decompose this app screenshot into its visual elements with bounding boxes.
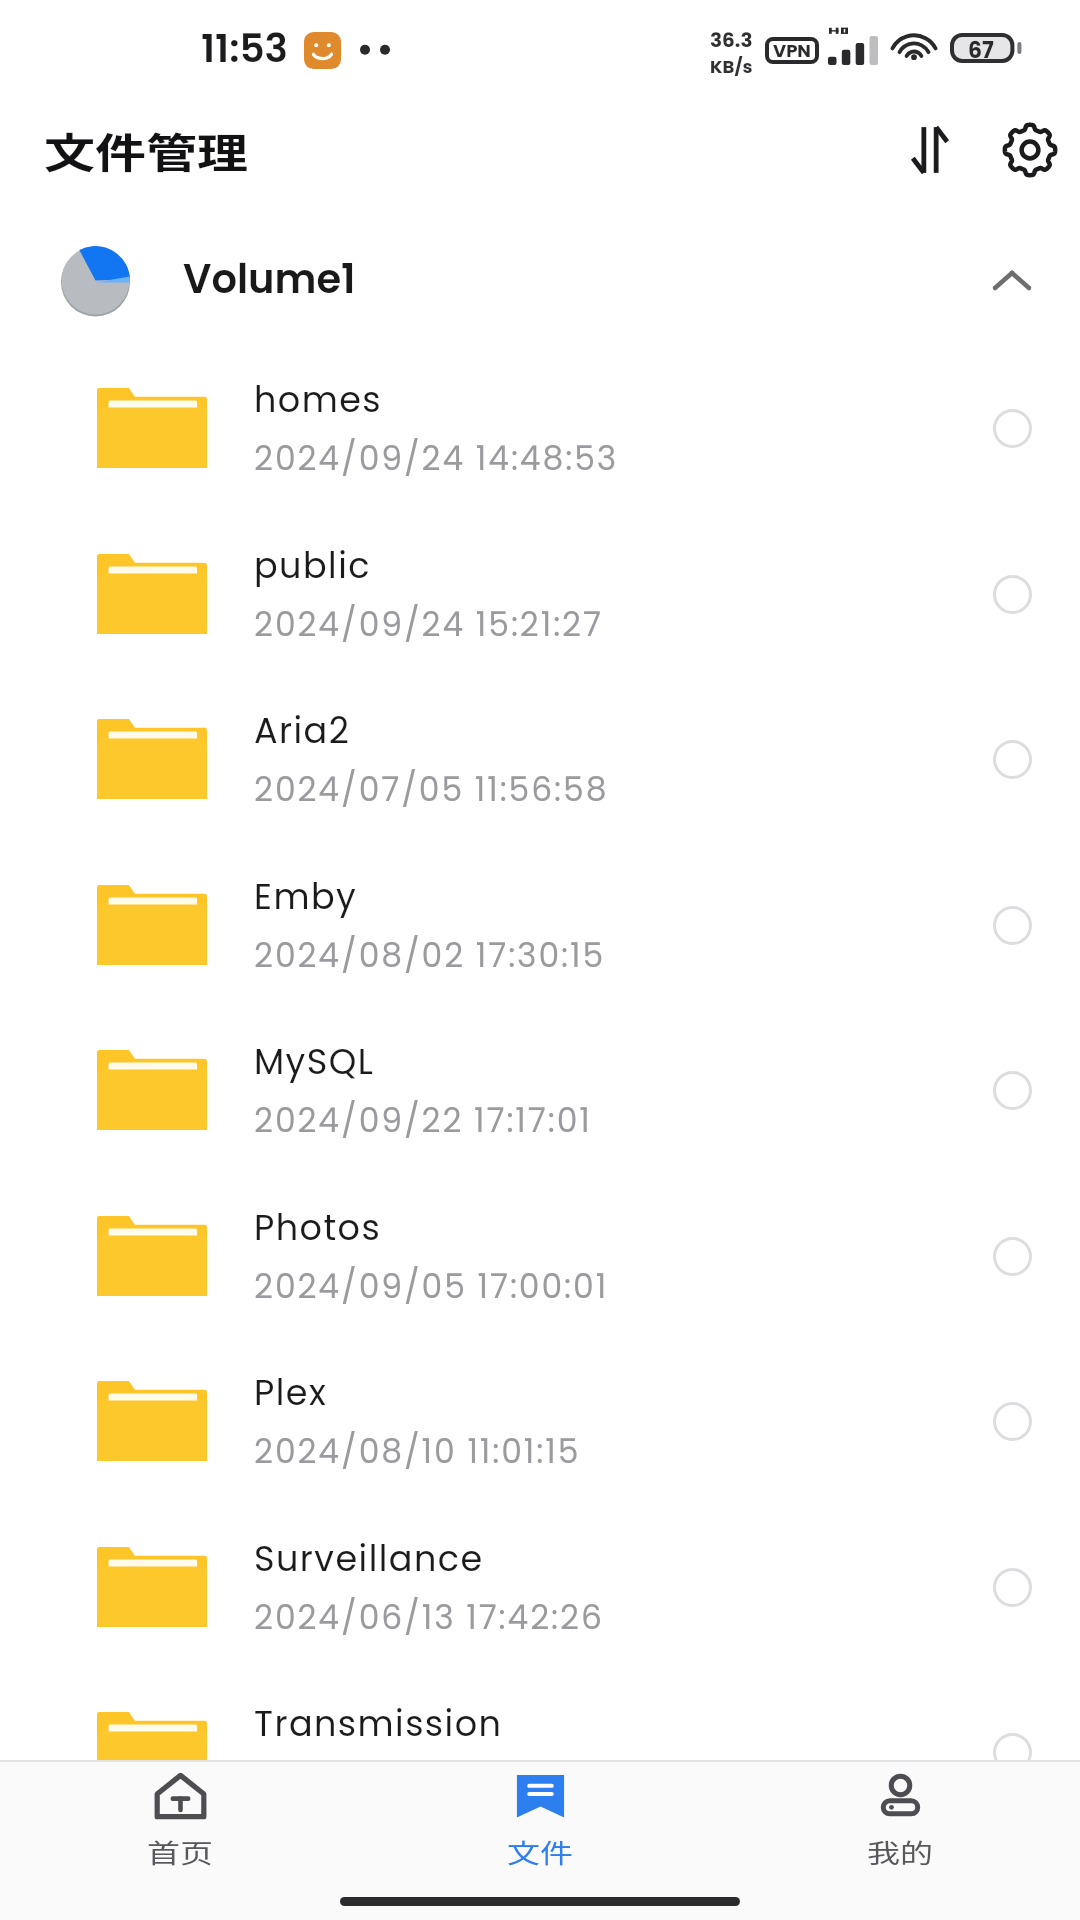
staticText: public: [254, 541, 371, 590]
button[interactable]: MySQL: [0, 1007, 1080, 1172]
button[interactable]: Select Aria2: [972, 719, 1052, 799]
staticText: Aria2: [254, 706, 351, 755]
button[interactable]: Select Emby: [972, 885, 1052, 965]
staticText: 36.3: [710, 26, 753, 54]
button[interactable]: Select MySQL: [972, 1050, 1052, 1130]
button[interactable]: 我的: [720, 1772, 1080, 1876]
button[interactable]: Select Transmission: [972, 1712, 1052, 1792]
staticText: Plex: [254, 1368, 328, 1417]
button[interactable]: Select homes: [972, 388, 1052, 468]
staticText: 2024/09/24 15:21:27: [254, 601, 603, 647]
staticText: 11:53: [201, 21, 288, 76]
staticText: Surveillance: [254, 1534, 484, 1583]
button[interactable]: Volume1: [0, 220, 1080, 340]
button[interactable]: Select Photos: [972, 1216, 1052, 1296]
staticText: 我的: [867, 1833, 933, 1871]
staticText: Emby: [254, 872, 358, 921]
staticText: KB/s: [710, 54, 753, 79]
button[interactable]: Surveillance: [0, 1504, 1080, 1669]
staticText: Volume1: [183, 251, 356, 307]
button[interactable]: Select Plex: [972, 1381, 1052, 1461]
staticText: MySQL: [254, 1037, 375, 1086]
staticText: 2024/07/05 11:56:58: [254, 766, 609, 812]
staticText: 首页: [147, 1833, 213, 1871]
staticText: VPN: [773, 38, 811, 63]
staticText: 2024/08/02 17:30:15: [254, 932, 606, 978]
button[interactable]: Collapse Volume1: [972, 240, 1052, 320]
staticText: 2024/05/30 09:12:44: [254, 1759, 618, 1805]
staticText: 67: [968, 35, 994, 66]
button[interactable]: public: [0, 511, 1080, 676]
button[interactable]: Photos: [0, 1173, 1080, 1338]
button[interactable]: homes: [0, 345, 1080, 510]
staticText: 文件: [507, 1833, 573, 1871]
button[interactable]: Settings: [980, 100, 1080, 200]
button[interactable]: Transmission: [0, 1669, 1080, 1834]
staticText: 2024/09/05 17:00:01: [254, 1263, 609, 1309]
button[interactable]: Emby: [0, 842, 1080, 1007]
staticText: 2024/06/13 17:42:26: [254, 1594, 604, 1640]
staticText: homes: [254, 375, 383, 424]
staticText: 2024/08/10 11:01:15: [254, 1428, 581, 1474]
button[interactable]: 文件: [360, 1772, 720, 1876]
button[interactable]: Aria2: [0, 676, 1080, 841]
staticText: Photos: [254, 1203, 382, 1252]
staticText: 2024/09/24 14:48:53: [254, 435, 619, 481]
button[interactable]: 首页: [0, 1772, 360, 1876]
staticText: Transmission: [254, 1699, 503, 1748]
staticText: 2024/09/22 17:17:01: [254, 1097, 592, 1143]
button[interactable]: Plex: [0, 1338, 1080, 1503]
button[interactable]: Select Surveillance: [972, 1547, 1052, 1627]
staticText: 文件管理: [44, 120, 249, 180]
button[interactable]: Sort: [880, 100, 980, 200]
button[interactable]: Select public: [972, 554, 1052, 634]
